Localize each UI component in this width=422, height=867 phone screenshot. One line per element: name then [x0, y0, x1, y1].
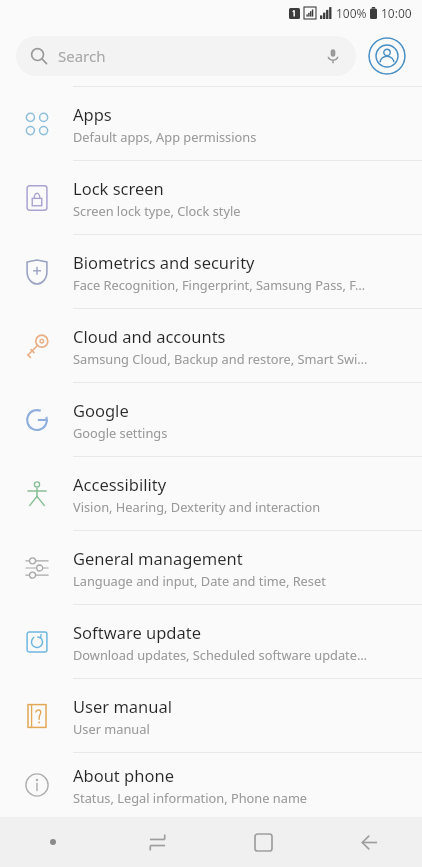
staticText: Google settings — [73, 424, 168, 441]
staticText: About phone — [73, 764, 174, 786]
button[interactable]: Biometrics and security — [0, 235, 422, 308]
staticText: Screen lock type, Clock style — [73, 202, 241, 219]
staticText: Search — [58, 46, 106, 66]
staticText: Cloud and accounts — [73, 325, 226, 347]
button[interactable]: Hide keyboard — [0, 817, 105, 867]
staticText: 100% — [336, 5, 367, 21]
button[interactable]: User manual — [0, 679, 422, 752]
button[interactable]: Google — [0, 383, 422, 456]
button[interactable]: Account — [368, 37, 406, 75]
staticText: User manual — [73, 720, 150, 737]
button[interactable]: Search — [16, 36, 356, 76]
other: Voice search — [324, 47, 342, 65]
staticText: Default apps, App permissions — [73, 128, 257, 145]
staticText: Language and input, Date and time, Reset — [73, 572, 326, 589]
staticText: Lock screen — [73, 177, 164, 199]
staticText: Samsung Cloud, Backup and restore, Smart… — [73, 350, 368, 367]
button[interactable]: Lock screen — [0, 161, 422, 234]
button[interactable]: General management — [0, 531, 422, 604]
staticText: Status, Legal information, Phone name — [73, 789, 308, 806]
button[interactable]: Apps — [0, 87, 422, 160]
button[interactable]: Software update — [0, 605, 422, 678]
staticText: Biometrics and security — [73, 251, 255, 273]
staticText: Accessibility — [73, 473, 167, 495]
staticText: General management — [73, 547, 243, 569]
staticText: User manual — [73, 695, 172, 717]
button[interactable]: Back — [316, 817, 422, 867]
button[interactable]: About phone — [0, 753, 422, 817]
staticText: Google — [73, 399, 129, 421]
button[interactable]: Cloud and accounts — [0, 309, 422, 382]
staticText: Software update — [73, 621, 201, 643]
button[interactable]: Recents — [105, 817, 210, 867]
staticText: 10:00 — [381, 5, 412, 21]
staticText: Face Recognition, Fingerprint, Samsung P… — [73, 276, 366, 293]
button[interactable]: Home — [210, 817, 316, 867]
button[interactable]: Accessibility — [0, 457, 422, 530]
staticText: Apps — [73, 103, 112, 125]
staticText: Vision, Hearing, Dexterity and interacti… — [73, 498, 321, 515]
staticText: Download updates, Scheduled software upd… — [73, 646, 368, 663]
